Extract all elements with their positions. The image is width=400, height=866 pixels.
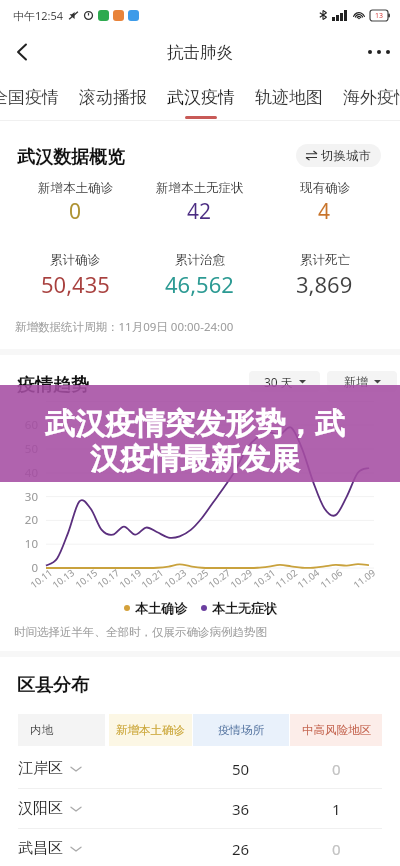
staticText: 0 [69, 197, 82, 226]
staticText: 抗击肺炎 [167, 42, 233, 63]
staticText: 10.31 [246, 566, 278, 595]
button[interactable]: Back [0, 30, 44, 74]
staticText: 11.02 [268, 566, 300, 595]
staticText: 轨迹地图 [255, 87, 323, 108]
staticText: 区县分布 [17, 674, 89, 697]
staticText: 10.25 [179, 566, 211, 595]
staticText: 3,869 [296, 269, 353, 299]
staticText: 11.06 [313, 566, 345, 595]
staticText: 本土确诊 [135, 600, 187, 616]
staticText: 11.04 [290, 566, 322, 595]
button[interactable]: 新增 [327, 371, 397, 392]
staticText: 4 [318, 197, 331, 226]
staticText: 11.09 [346, 566, 378, 595]
staticText: 46,562 [165, 269, 234, 299]
staticText: 中高风险地区 [302, 723, 371, 737]
button[interactable]: 武汉疫情 [167, 74, 235, 121]
staticText: 累计治愈 [175, 252, 225, 268]
staticText: 0 [332, 759, 341, 779]
button[interactable]: 全国疫情 [0, 74, 59, 121]
staticText: 10.29 [223, 566, 255, 595]
staticText: 26 [232, 839, 250, 859]
staticText: 36 [232, 799, 250, 819]
staticText: 30 天 [264, 374, 293, 390]
button[interactable]: 轨迹地图 [255, 74, 323, 121]
staticText: 汉疫情最新发展 [90, 440, 300, 478]
staticText: 全国疫情 [0, 87, 59, 108]
button[interactable]: 滚动播报 [79, 74, 147, 121]
button[interactable]: 江岸区 [0, 749, 400, 788]
staticText: 新增数据统计周期：11月09日 00:00-24:00 [15, 319, 234, 335]
staticText: 20 [10, 512, 38, 528]
staticText: 武汉疫情 [167, 87, 235, 108]
button[interactable]: 中高风险地区 [290, 714, 382, 746]
button[interactable]: 疫情场所 [193, 714, 289, 746]
staticText: 现有确诊 [300, 180, 350, 196]
staticText: 10.21 [134, 566, 166, 595]
staticText: 武汉疫情突发形势，武 [45, 405, 345, 443]
staticText: 1 [332, 799, 341, 819]
staticText: 武汉数据概览 [17, 146, 125, 169]
staticText: 武昌区 [18, 839, 63, 858]
staticText: 疫情趋势 [17, 374, 89, 397]
staticText: 累计确诊 [50, 252, 100, 268]
staticText: 累计死亡 [300, 252, 350, 268]
button[interactable]: More options [352, 30, 400, 74]
button[interactable]: 武昌区 [0, 829, 400, 866]
staticText: 江岸区 [18, 759, 63, 778]
staticText: 中午12:54 [13, 8, 64, 23]
button[interactable]: 海外疫情 [343, 74, 400, 121]
button[interactable]: 切换城市 [296, 144, 381, 167]
button[interactable]: 30 天 [249, 371, 320, 392]
staticText: 10.17 [90, 566, 122, 595]
staticText: 10.13 [45, 566, 77, 595]
staticText: 新增 [344, 374, 368, 389]
button[interactable]: 汉阳区 [0, 789, 400, 828]
staticText: 0 [10, 560, 38, 576]
staticText: 10.15 [68, 566, 100, 595]
staticText: 50 [232, 759, 250, 779]
staticText: 时间选择近半年、全部时，仅展示确诊病例趋势图 [14, 625, 267, 639]
button[interactable]: 内地 [18, 714, 105, 746]
staticText: 0 [332, 839, 341, 859]
staticText: 滚动播报 [79, 87, 147, 108]
staticText: 本土无症状 [212, 600, 277, 616]
staticText: 10.23 [157, 566, 189, 595]
button[interactable]: 新增本土确诊 [109, 714, 192, 746]
staticText: 疫情场所 [218, 723, 264, 737]
staticText: 海外疫情 [343, 87, 400, 108]
staticText: 10.11 [23, 566, 55, 595]
staticText: 10.27 [201, 566, 233, 595]
staticText: 内地 [30, 723, 53, 737]
staticText: 10.19 [112, 566, 144, 595]
staticText: 切换城市 [321, 148, 371, 164]
staticText: 10 [10, 536, 38, 552]
staticText: 50,435 [41, 269, 110, 299]
staticText: 30 [10, 489, 38, 505]
staticText: 新增本土确诊 [116, 723, 185, 737]
staticText: 13 [375, 11, 384, 21]
staticText: 新增本土确诊 [38, 180, 113, 196]
staticText: 新增本土无症状 [156, 180, 244, 196]
staticText: 42 [187, 197, 212, 226]
staticText: 汉阳区 [18, 799, 63, 818]
